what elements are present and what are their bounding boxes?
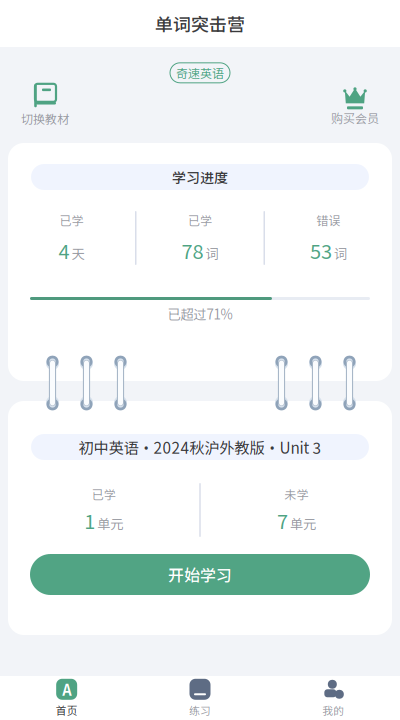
- staticText: 单元: [290, 513, 316, 533]
- staticText: 初中英语·2024秋沪外教版·Unit 3: [78, 436, 321, 458]
- staticText: 7: [277, 506, 288, 535]
- staticText: 已超过71%: [167, 304, 232, 323]
- staticText: 错误: [316, 211, 340, 229]
- staticText: 开始学习: [168, 563, 232, 586]
- staticText: 已学: [188, 211, 212, 229]
- staticText: 词: [334, 243, 347, 263]
- button[interactable]: 开始学习: [30, 554, 370, 595]
- staticText: 53: [310, 236, 332, 265]
- staticText: 1: [84, 506, 95, 535]
- staticText: 奇速英语: [176, 64, 224, 81]
- staticText: 未学: [284, 485, 308, 503]
- staticText: 78: [181, 236, 203, 265]
- staticText: 我的: [322, 702, 344, 718]
- button[interactable]: 我的: [267, 676, 400, 720]
- staticText: 购买会员: [331, 109, 379, 127]
- staticText: A: [62, 679, 71, 700]
- staticText: 练习: [189, 702, 211, 718]
- staticText: 单词突击营: [155, 10, 245, 37]
- staticText: 切换教材: [21, 110, 69, 127]
- staticText: 词: [205, 243, 218, 263]
- staticText: 首页: [56, 702, 78, 718]
- staticText: 学习进度: [172, 167, 228, 187]
- button[interactable]: 奇速英语: [170, 63, 230, 83]
- staticText: 4: [58, 236, 69, 265]
- button[interactable]: 购买会员: [310, 84, 400, 127]
- button[interactable]: A: [0, 676, 133, 720]
- staticText: 天: [71, 243, 84, 263]
- staticText: 已学: [59, 211, 83, 229]
- button[interactable]: 练习: [133, 676, 267, 720]
- button[interactable]: 切换教材: [0, 84, 90, 127]
- staticText: 已学: [92, 485, 116, 503]
- staticText: 单元: [97, 513, 123, 533]
